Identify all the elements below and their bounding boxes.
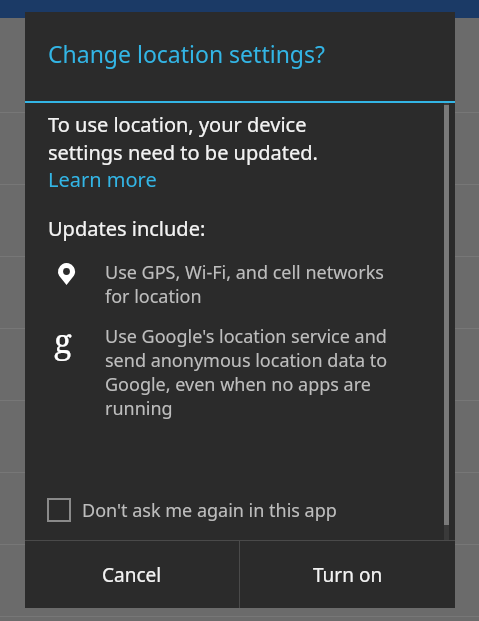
button[interactable]: Turn on [240,541,455,608]
staticText: Change location settings? [48,38,325,69]
staticText: Cancel [102,562,162,588]
staticText: Use GPS, Wi-Fi, and cell networks for lo… [105,260,384,308]
staticText: Don't ask me again in this app [82,498,337,523]
button[interactable]: Learn more [48,166,157,193]
button[interactable]: Don't ask me again in this app [48,480,431,540]
staticText: Use Google's location service and send a… [105,324,388,420]
staticText: g [54,318,72,363]
staticText: Updates include: [48,215,206,242]
other: Location [58,263,75,285]
staticText: To use location, your device settings ne… [48,111,318,166]
staticText: Turn on [313,562,383,588]
staticText: Learn more [48,166,157,193]
other: Google [54,318,72,363]
button[interactable]: Cancel [25,541,239,608]
